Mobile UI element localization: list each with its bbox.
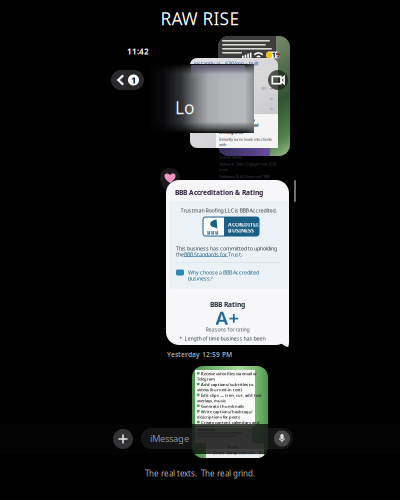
staticText: 1: [131, 74, 136, 86]
staticText: the: [176, 251, 185, 258]
staticText: 19: [272, 51, 280, 59]
staticText: Write captions/hashtags/: [201, 409, 253, 414]
staticText: overlays, music: [197, 398, 226, 403]
staticText: Business?: [188, 275, 212, 282]
staticText: Lo: [175, 96, 194, 119]
staticText: Resize videos for different: [201, 431, 251, 436]
staticText: 11:42: [127, 46, 149, 57]
staticText: videos (burned-in text): [197, 387, 242, 392]
staticText: Trustman Roofing LLC is BBB Accredited.: [180, 207, 276, 214]
staticText: , Buffer, or: [257, 450, 276, 455]
staticText: Intelligence: [219, 129, 243, 135]
staticText: Database & AI-Powered CRM.: [219, 174, 271, 179]
staticText: Create content calendars and: [201, 420, 260, 425]
staticText: Generate thumbnails: [201, 403, 244, 409]
staticText: Automated Outreach, Deliverability: [219, 149, 256, 160]
staticText: Network, Sales Engagement, B2B Lead: [219, 161, 277, 172]
button[interactable]: Back, 1 unread: [111, 70, 144, 90]
staticText: The real texts. The real grind.: [145, 468, 255, 479]
staticText: Set up: [227, 450, 237, 455]
staticText: iMessage: [150, 432, 189, 445]
staticText: BUSINESS: [228, 227, 254, 234]
staticText: A+: [215, 305, 239, 330]
staticText: scheduling plans: [197, 425, 232, 430]
staticText: BBB Rating: [210, 300, 245, 309]
button[interactable]: FaceTime: [268, 70, 288, 90]
staticText: instantly.ai · 630/mo – built: [194, 60, 259, 67]
button[interactable]: Add attachment: [113, 429, 133, 449]
staticText: ACCREDITED: [228, 221, 260, 228]
staticText: Add captions/subtitles to: [201, 382, 253, 387]
staticText: Length of time business has been: [185, 335, 266, 342]
staticText: Edit clips — trim, cut, add text: [201, 393, 262, 398]
staticText: Instantly turns leads into clients with: [219, 136, 272, 147]
staticText: descriptions for posts: [197, 414, 240, 420]
staticText: ✕: [208, 450, 211, 455]
button[interactable]: Message field: [141, 428, 293, 449]
staticText: BBB Standards for Trust.: [184, 251, 242, 258]
staticText: npt: [261, 85, 266, 90]
staticText: Why choose a BBB Accredited: [188, 269, 259, 276]
staticText: Later.com: [238, 450, 255, 455]
staticText: RAW RISE: [160, 7, 239, 30]
staticText: BBB: [207, 229, 219, 236]
staticText: Direct: [212, 450, 223, 455]
staticText: Instantly.ai – Sales Engagement & Lead: [219, 117, 259, 128]
staticText: Yesterday 12:59 PM: [167, 350, 232, 359]
staticText: Receive video files via email or: [201, 371, 257, 376]
staticText: Reasons for rating: [205, 326, 249, 333]
staticText: BBB Accreditation & Rating: [175, 188, 263, 197]
staticText: Telegram: [197, 376, 215, 382]
staticText: Tools: [227, 444, 238, 449]
staticText: This business has committed to upholding: [176, 245, 277, 252]
